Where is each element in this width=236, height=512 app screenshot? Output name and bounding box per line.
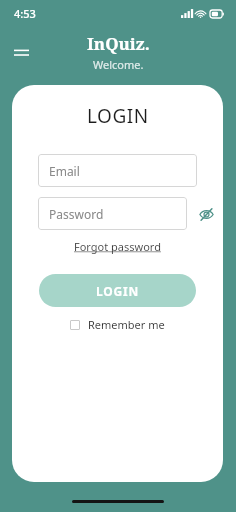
staticText: Password <box>49 206 104 222</box>
button[interactable]: Menu <box>6 38 36 68</box>
button[interactable]: Show password <box>192 200 220 228</box>
staticText: LOGIN <box>87 103 149 129</box>
button[interactable]: Password <box>38 197 187 230</box>
staticText: Welcome. <box>93 57 144 72</box>
staticText: Forgot password <box>74 239 161 254</box>
button[interactable]: Forgot password <box>72 238 163 255</box>
button[interactable]: Remember me <box>70 317 165 332</box>
staticText: 4:53 <box>14 6 36 21</box>
staticText: LOGIN <box>96 283 140 299</box>
staticText: Email <box>49 163 80 179</box>
button[interactable]: LOGIN <box>39 274 196 307</box>
button[interactable]: Email <box>38 154 197 187</box>
staticText: Remember me <box>88 317 165 332</box>
staticText: InQuiz. <box>87 32 150 55</box>
